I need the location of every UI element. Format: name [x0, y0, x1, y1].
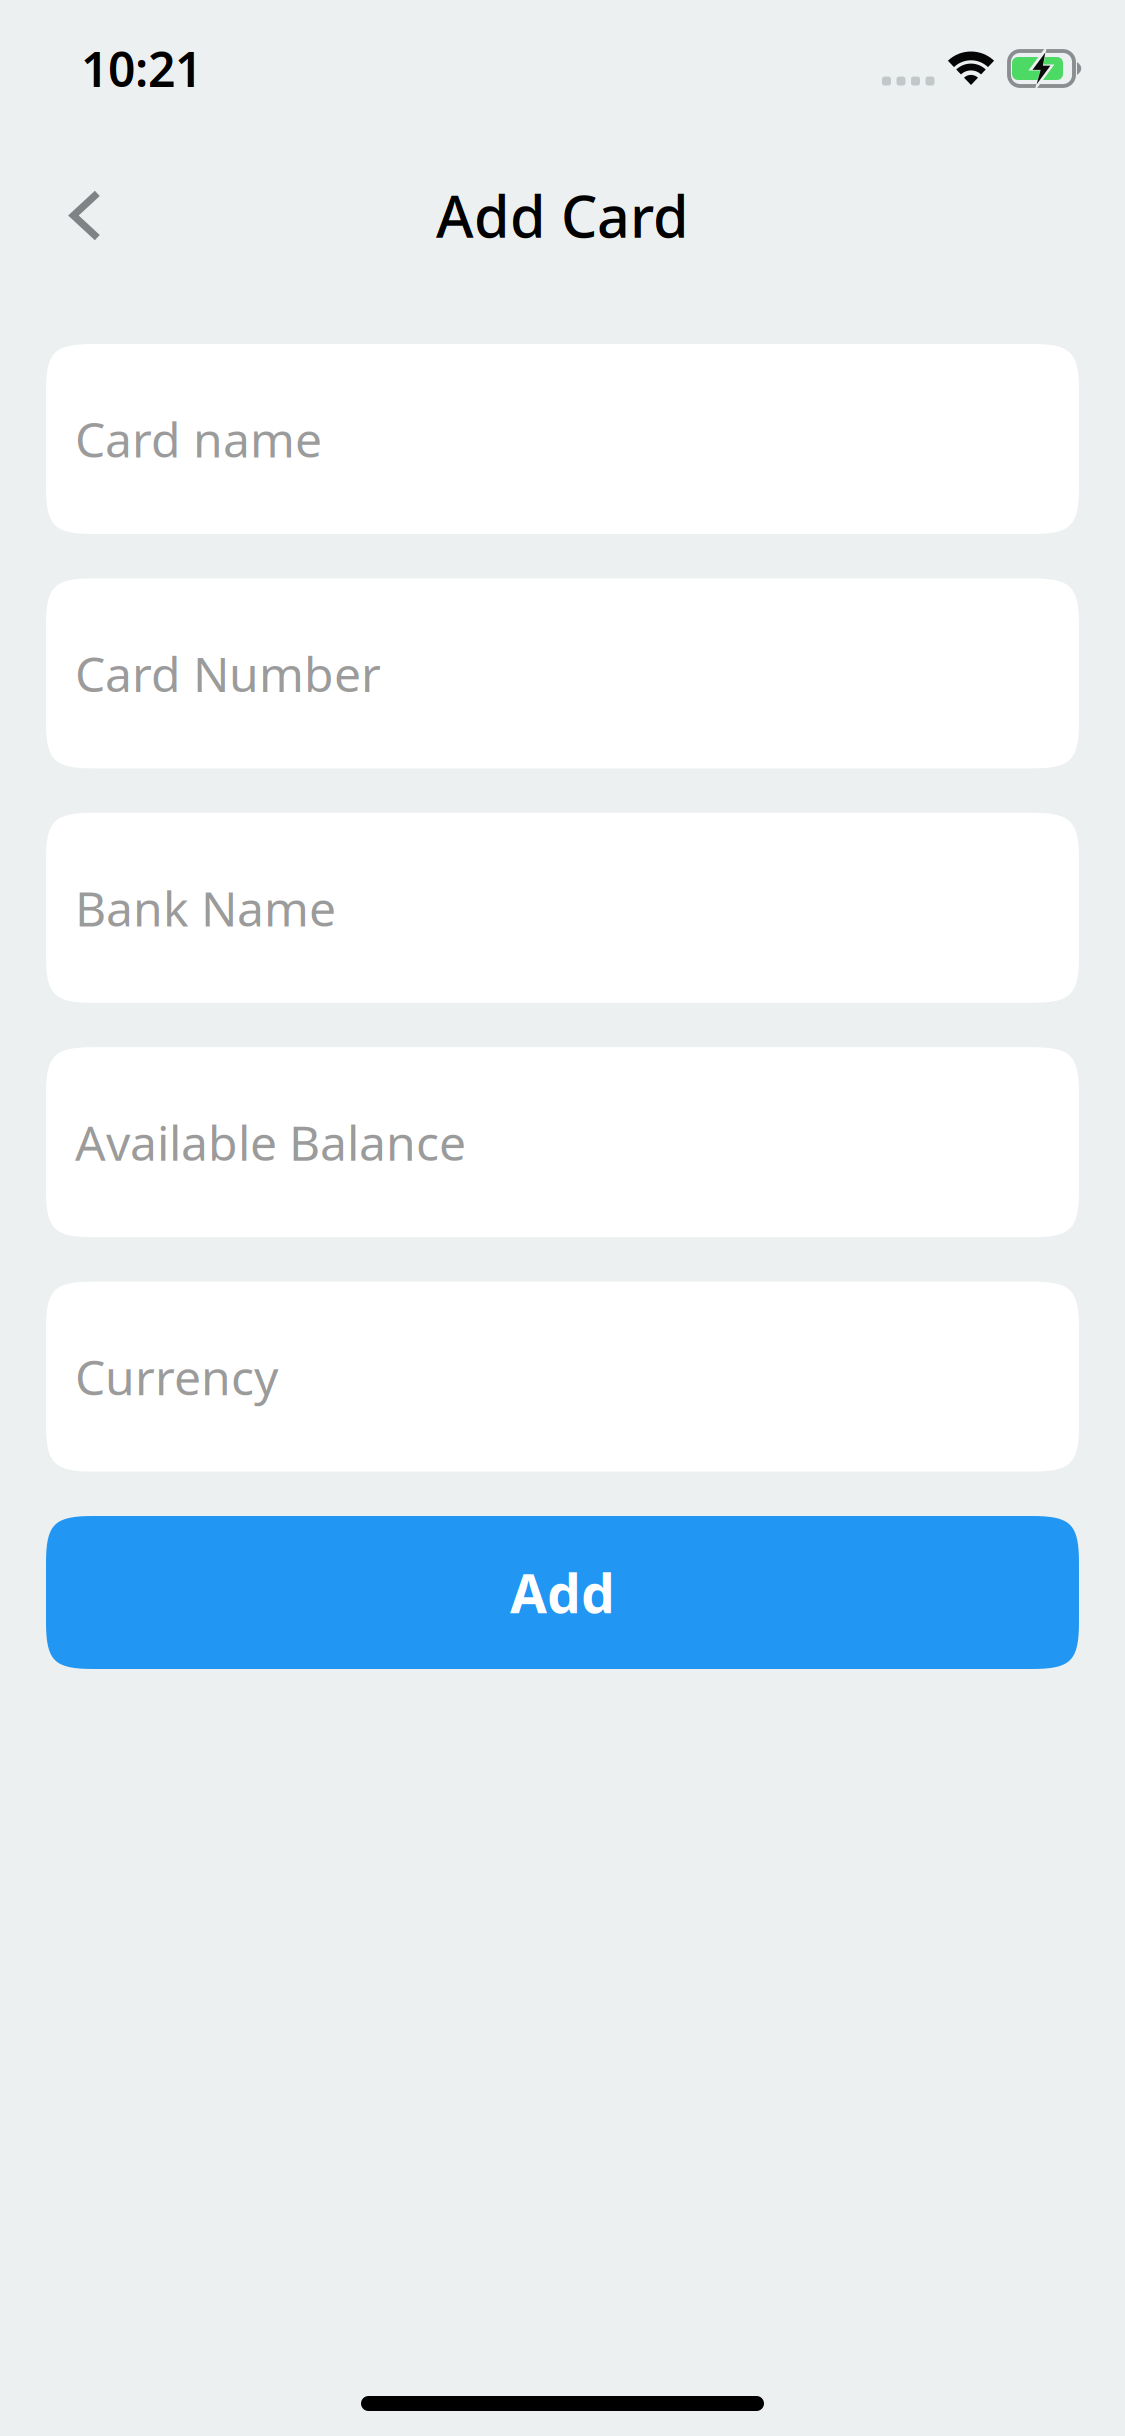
staticText: 10:21	[81, 37, 202, 100]
staticText: Add	[510, 1557, 615, 1628]
staticText: Card Number	[75, 641, 381, 705]
staticText: Add Card	[436, 177, 689, 253]
staticText: Currency	[75, 1345, 278, 1408]
button[interactable]: Available Balance	[46, 1047, 1079, 1237]
button[interactable]: Card name	[46, 344, 1079, 534]
staticText: Bank Name	[75, 876, 336, 940]
button[interactable]: Back	[39, 169, 131, 261]
button[interactable]: Currency	[46, 1282, 1079, 1472]
button[interactable]: Bank Name	[46, 813, 1079, 1003]
staticText: Card name	[75, 407, 322, 471]
staticText: Available Balance	[75, 1110, 466, 1174]
button[interactable]: Add	[46, 1516, 1079, 1669]
button[interactable]: Card Number	[46, 578, 1079, 768]
